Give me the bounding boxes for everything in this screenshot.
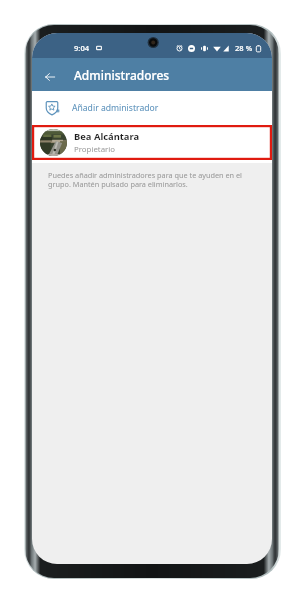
staticText: Administradores	[74, 67, 170, 83]
staticText: 9:04	[74, 43, 90, 53]
staticText: Propietario	[74, 144, 116, 155]
button[interactable]: Añadir administrador	[32, 91, 272, 125]
staticText: Añadir administrador	[72, 102, 159, 114]
staticText: Puedes añadir administradores para que t…	[48, 170, 243, 190]
button[interactable]: Bea Alcántara	[32, 125, 272, 160]
staticText: Bea Alcántara	[74, 130, 140, 143]
staticText: 28 %	[235, 43, 253, 53]
button[interactable]: Back	[39, 64, 61, 86]
